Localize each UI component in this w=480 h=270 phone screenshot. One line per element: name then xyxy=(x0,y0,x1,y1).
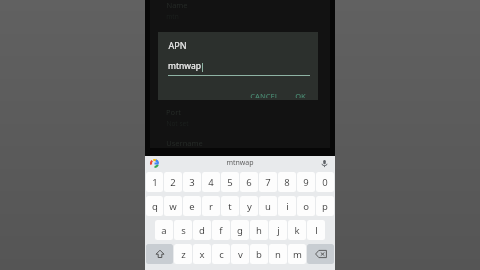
staticText: r xyxy=(209,200,213,213)
button[interactable]: k xyxy=(288,220,306,240)
staticText: p xyxy=(322,200,328,213)
button[interactable]: 0 xyxy=(316,172,334,192)
staticText: Port xyxy=(166,107,181,117)
button[interactable]: d xyxy=(193,220,211,240)
staticText: y xyxy=(247,200,252,213)
staticText: m xyxy=(293,248,302,261)
staticText: 7 xyxy=(265,176,271,189)
staticText: 6 xyxy=(246,176,252,189)
button[interactable]: u xyxy=(259,196,277,216)
button[interactable]: e xyxy=(183,196,201,216)
staticText: u xyxy=(265,200,271,213)
button[interactable]: z xyxy=(174,244,192,264)
button[interactable]: Shift xyxy=(146,244,173,264)
button[interactable]: Google xyxy=(150,159,159,168)
button[interactable]: c xyxy=(212,244,230,264)
staticText: a xyxy=(161,224,167,237)
button[interactable]: Port xyxy=(166,107,189,128)
staticText: e xyxy=(189,200,195,213)
button[interactable]: f xyxy=(212,220,230,240)
staticText: w xyxy=(169,200,177,213)
staticText: 8 xyxy=(284,176,290,189)
button[interactable]: 6 xyxy=(240,172,258,192)
staticText: APN xyxy=(168,39,187,51)
button[interactable]: mtnwap xyxy=(168,60,310,72)
button[interactable]: CANCEL xyxy=(246,89,283,100)
staticText: x xyxy=(199,248,205,261)
staticText: Name xyxy=(166,0,188,10)
staticText: 3 xyxy=(189,176,195,189)
button[interactable]: t xyxy=(221,196,239,216)
staticText: d xyxy=(199,224,205,237)
button[interactable]: 4 xyxy=(202,172,220,192)
button[interactable]: y xyxy=(240,196,258,216)
staticText: z xyxy=(181,248,186,261)
button[interactable]: Username xyxy=(166,138,203,148)
staticText: l xyxy=(315,224,318,237)
staticText: 9 xyxy=(303,176,309,189)
button[interactable]: Name xyxy=(166,0,188,21)
staticText: b xyxy=(256,248,262,261)
button[interactable]: n xyxy=(269,244,287,264)
button[interactable]: Voice input xyxy=(320,159,329,168)
button[interactable]: OK xyxy=(291,89,310,100)
staticText: c xyxy=(219,248,224,261)
button[interactable]: r xyxy=(202,196,220,216)
staticText: OK xyxy=(295,91,306,98)
button[interactable]: Backspace xyxy=(307,244,334,264)
staticText: 0 xyxy=(322,176,328,189)
staticText: 1 xyxy=(152,176,158,189)
button[interactable]: a xyxy=(155,220,173,240)
staticText: g xyxy=(237,224,243,237)
button[interactable]: s xyxy=(174,220,192,240)
button[interactable]: 8 xyxy=(278,172,296,192)
staticText: Username xyxy=(166,138,203,148)
staticText: mtnwap xyxy=(226,158,254,168)
button[interactable]: q xyxy=(146,196,163,216)
staticText: o xyxy=(303,200,309,213)
button[interactable]: l xyxy=(307,220,325,240)
button[interactable]: j xyxy=(269,220,287,240)
staticText: 2 xyxy=(170,176,176,189)
button[interactable]: 9 xyxy=(297,172,315,192)
button[interactable]: p xyxy=(316,196,334,216)
staticText: q xyxy=(152,200,158,213)
button[interactable]: w xyxy=(164,196,182,216)
staticText: i xyxy=(286,200,289,213)
staticText: f xyxy=(219,224,223,237)
button[interactable]: x xyxy=(193,244,211,264)
button[interactable]: v xyxy=(231,244,249,264)
button[interactable]: o xyxy=(297,196,315,216)
staticText: s xyxy=(181,224,186,237)
button[interactable]: m xyxy=(288,244,306,264)
staticText: k xyxy=(294,224,300,237)
staticText: n xyxy=(275,248,281,261)
button[interactable]: 3 xyxy=(183,172,201,192)
staticText: CANCEL xyxy=(250,91,279,98)
button[interactable]: 2 xyxy=(164,172,182,192)
staticText: j xyxy=(277,224,280,237)
button[interactable]: i xyxy=(278,196,296,216)
button[interactable]: mtnwap xyxy=(226,158,254,168)
staticText: v xyxy=(238,248,243,261)
staticText: 4 xyxy=(208,176,214,189)
staticText: h xyxy=(256,224,262,237)
staticText: 5 xyxy=(227,176,233,189)
button[interactable]: b xyxy=(250,244,268,264)
button[interactable]: 7 xyxy=(259,172,277,192)
button[interactable]: 5 xyxy=(221,172,239,192)
staticText: t xyxy=(228,200,232,213)
staticText: mtnwap xyxy=(168,60,201,72)
button[interactable]: h xyxy=(250,220,268,240)
button[interactable]: 1 xyxy=(146,172,163,192)
button[interactable]: g xyxy=(231,220,249,240)
